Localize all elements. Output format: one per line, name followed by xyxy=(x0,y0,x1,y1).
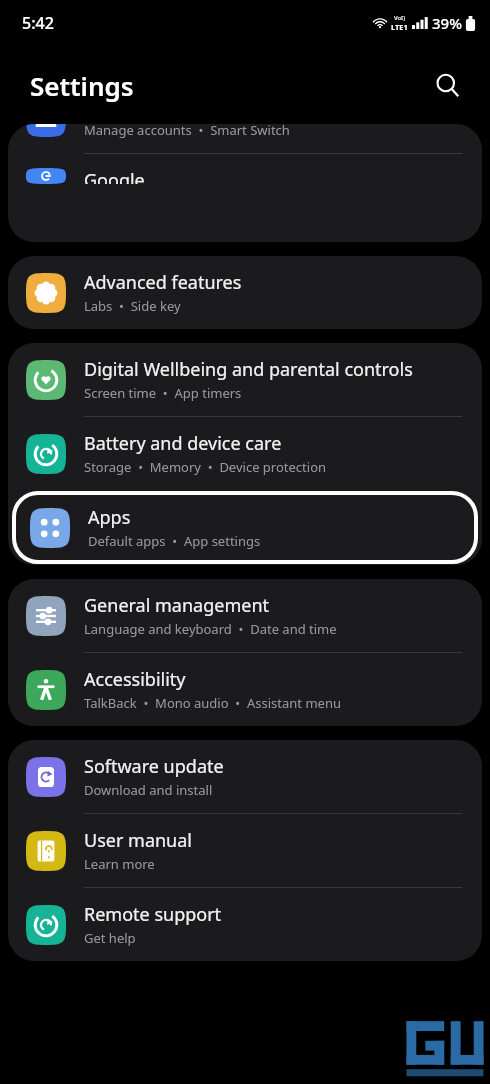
staticText: Labs • Side key xyxy=(84,297,181,315)
button[interactable]: Remote support xyxy=(8,888,482,961)
button[interactable]: Apps xyxy=(12,491,478,564)
staticText: User manual xyxy=(84,828,192,853)
staticText: 5:42 xyxy=(22,12,54,34)
button[interactable]: Google xyxy=(8,154,482,198)
staticText: Download and install xyxy=(84,781,213,799)
button[interactable]: Accessibility xyxy=(8,653,482,726)
staticText: Get help xyxy=(84,929,136,947)
button[interactable]: Battery and device care xyxy=(8,417,482,490)
staticText: VoI) xyxy=(394,14,405,22)
button[interactable]: User manual xyxy=(8,814,482,887)
staticText: General management xyxy=(84,593,270,618)
staticText: Storage • Memory • Device protection xyxy=(84,458,327,476)
staticText: Battery and device care xyxy=(84,431,282,456)
staticText: Language and keyboard • Date and time xyxy=(84,620,337,638)
staticText: 39% xyxy=(432,13,462,33)
staticText: Software update xyxy=(84,754,224,779)
staticText: Accessibility xyxy=(84,667,186,692)
button[interactable]: General management xyxy=(8,579,482,652)
staticText: Remote support xyxy=(84,902,222,927)
button[interactable]: Digital Wellbeing and parental controls xyxy=(8,343,482,416)
staticText: Digital Wellbeing and parental controls xyxy=(84,357,413,382)
staticText: Settings xyxy=(30,68,134,103)
button[interactable]: Software update xyxy=(8,740,482,813)
button[interactable]: Apps xyxy=(12,491,478,564)
staticText: Screen time • App timers xyxy=(84,384,242,402)
staticText: Default apps • App settings xyxy=(88,532,261,550)
staticText: Advanced features xyxy=(84,270,242,295)
button[interactable]: Accounts and backup xyxy=(8,124,482,153)
staticText: Apps xyxy=(88,505,131,530)
button[interactable]: Advanced features xyxy=(8,256,482,329)
staticText: LTE1 xyxy=(391,22,408,32)
staticText: Manage accounts • Smart Switch xyxy=(84,124,290,139)
staticText: Learn more xyxy=(84,855,155,873)
button[interactable]: Search xyxy=(426,64,468,106)
staticText: Google xyxy=(84,168,145,184)
staticText: TalkBack • Mono audio • Assistant menu xyxy=(84,694,341,712)
